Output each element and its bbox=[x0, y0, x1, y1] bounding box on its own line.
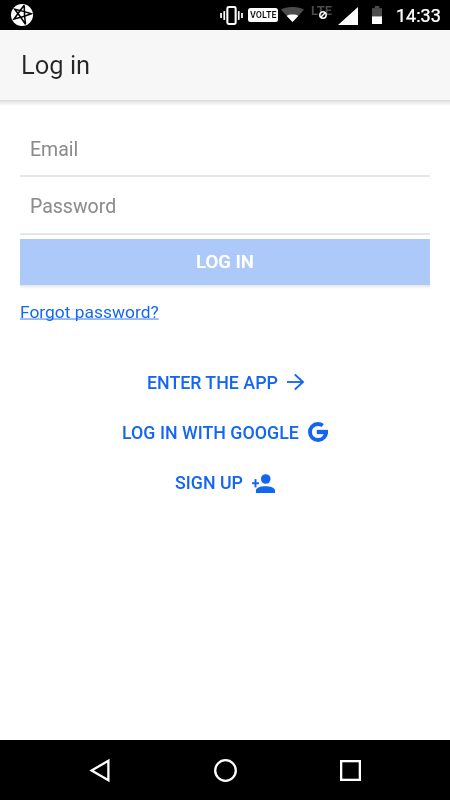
staticText: LOG IN WITH GOOGLE bbox=[122, 422, 299, 443]
staticText: VOLTE bbox=[250, 10, 277, 21]
staticText: 14:33 bbox=[396, 5, 441, 26]
button[interactable]: SIGN UP bbox=[0, 467, 450, 497]
button[interactable]: Recent apps bbox=[324, 744, 376, 796]
button[interactable]: Home bbox=[199, 744, 251, 796]
button[interactable]: LOG IN bbox=[20, 239, 430, 285]
button[interactable]: ENTER THE APP bbox=[0, 367, 450, 397]
button[interactable]: LOG IN WITH GOOGLE bbox=[0, 417, 450, 447]
staticText: SIGN UP bbox=[175, 472, 243, 493]
button[interactable]: Forgot password? bbox=[20, 302, 159, 322]
staticText: Log in bbox=[21, 50, 91, 80]
staticText: Forgot password? bbox=[20, 302, 159, 322]
staticText: Password bbox=[30, 195, 117, 218]
staticText: ENTER THE APP bbox=[147, 372, 278, 393]
staticText: Email bbox=[30, 138, 79, 161]
button[interactable]: Back bbox=[74, 744, 126, 796]
button[interactable] bbox=[20, 132, 450, 166]
staticText: LTE bbox=[311, 3, 333, 18]
button[interactable] bbox=[20, 189, 450, 223]
staticText: LOG IN bbox=[196, 251, 254, 273]
